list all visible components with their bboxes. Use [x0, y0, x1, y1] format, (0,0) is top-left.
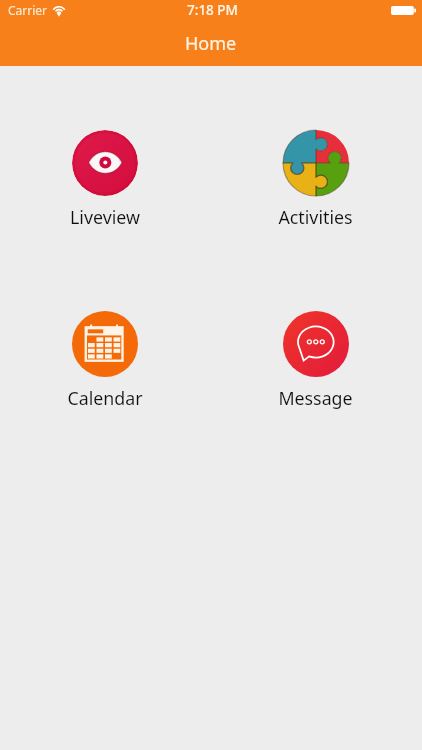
- staticText: Calendar: [67, 386, 143, 410]
- staticText: 7:18 PM: [187, 1, 238, 19]
- other: Calendar: [72, 311, 138, 377]
- staticText: Liveview: [70, 205, 140, 229]
- staticText: Message: [278, 386, 353, 410]
- staticText: Home: [185, 31, 237, 56]
- button[interactable]: Liveview: [70, 130, 140, 229]
- other: Liveview: [72, 130, 138, 196]
- other: Wi-Fi signal: [52, 5, 66, 15]
- staticText: Carrier: [8, 2, 48, 18]
- staticText: Activities: [278, 205, 353, 229]
- other: Activities: [283, 130, 349, 196]
- button[interactable]: Message: [278, 311, 353, 410]
- other: Message: [283, 311, 349, 377]
- button[interactable]: Calendar: [67, 311, 143, 410]
- other: Battery full: [391, 6, 416, 15]
- button[interactable]: Activities: [278, 130, 353, 229]
